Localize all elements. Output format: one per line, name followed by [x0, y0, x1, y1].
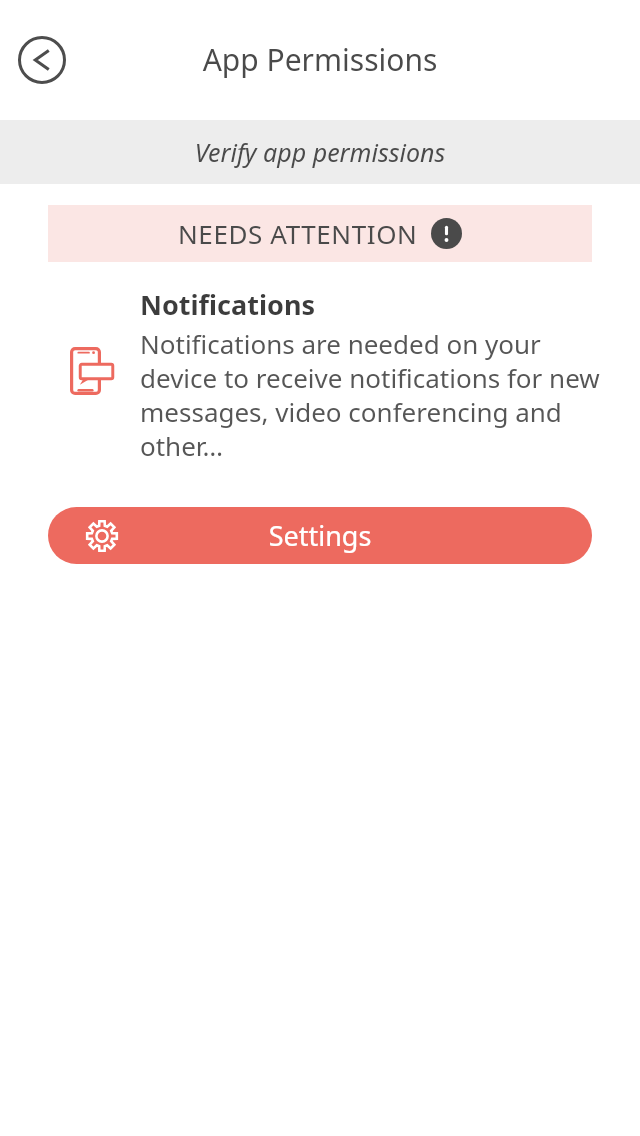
- button[interactable]: Back: [18, 36, 66, 84]
- staticText: Settings: [48, 517, 592, 554]
- staticText: Verify app permissions: [0, 135, 640, 169]
- button[interactable]: Notifications: [0, 286, 640, 463]
- button[interactable]: Settings: [48, 507, 592, 564]
- button[interactable]: NEEDS ATTENTION: [48, 205, 592, 262]
- staticText: Notifications are needed on your device …: [140, 326, 600, 463]
- staticText: App Permissions: [0, 39, 640, 80]
- staticText: Notifications: [140, 286, 315, 323]
- staticText: NEEDS ATTENTION: [178, 216, 418, 251]
